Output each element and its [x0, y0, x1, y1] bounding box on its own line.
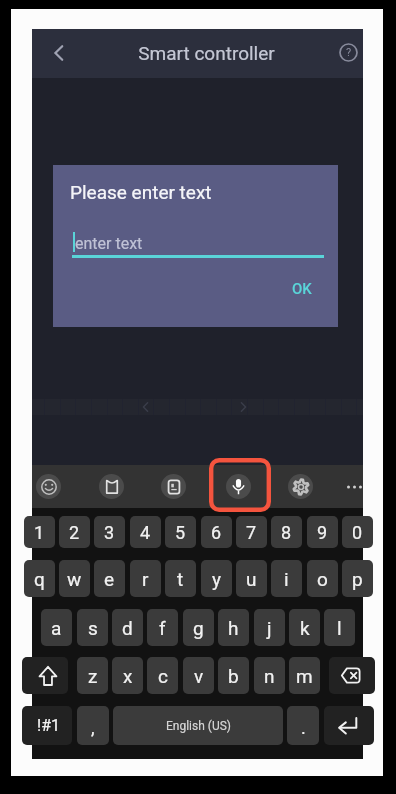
button[interactable]: Help — [332, 36, 365, 69]
staticText: 5 — [175, 522, 186, 543]
button[interactable]: , — [77, 706, 109, 745]
staticText: . — [301, 717, 306, 738]
staticText: a — [51, 617, 62, 639]
staticText: ? — [346, 46, 352, 59]
staticText: g — [193, 617, 204, 639]
button[interactable]: v — [183, 657, 214, 694]
button[interactable]: . — [287, 706, 319, 745]
staticText: 4 — [140, 522, 151, 543]
staticText: c — [158, 665, 168, 687]
staticText: 8 — [281, 522, 292, 543]
staticText: p — [352, 568, 363, 590]
staticText: w — [67, 568, 82, 590]
staticText: m — [296, 665, 313, 687]
staticText: d — [122, 617, 133, 639]
button[interactable]: r — [130, 560, 161, 597]
staticText: enter text — [75, 234, 143, 253]
button[interactable]: Stickers — [161, 474, 186, 499]
staticText: s — [88, 617, 98, 639]
staticText: Smart controller — [138, 42, 275, 64]
button[interactable]: !#1 — [22, 706, 72, 745]
button[interactable]: o — [307, 560, 338, 597]
button[interactable]: 8 — [271, 516, 302, 548]
button[interactable]: Voice input — [226, 474, 251, 499]
staticText: z — [88, 665, 98, 687]
button[interactable]: l — [324, 609, 355, 646]
staticText: b — [228, 665, 239, 687]
button[interactable]: 9 — [307, 516, 338, 548]
button[interactable]: e — [94, 560, 125, 597]
button[interactable]: Emoji — [36, 474, 61, 499]
button[interactable]: 1 — [24, 516, 55, 548]
button[interactable]: Back — [42, 36, 75, 69]
button[interactable]: 2 — [59, 516, 90, 548]
staticText: OK — [292, 280, 312, 298]
button[interactable]: z — [77, 657, 108, 694]
button[interactable]: More options — [342, 474, 367, 499]
button[interactable]: Enter — [324, 706, 374, 745]
staticText: 3 — [104, 522, 115, 543]
button[interactable]: 7 — [236, 516, 267, 548]
staticText: 0 — [352, 522, 363, 543]
button[interactable]: n — [254, 657, 285, 694]
staticText: 7 — [246, 522, 257, 543]
button[interactable]: 0 — [342, 516, 373, 548]
button[interactable]: m — [289, 657, 320, 694]
button[interactable]: s — [77, 609, 108, 646]
staticText: , — [91, 717, 95, 738]
staticText: u — [246, 568, 257, 590]
staticText: t — [177, 568, 184, 590]
staticText: o — [317, 568, 328, 590]
staticText: i — [284, 568, 289, 590]
button[interactable]: u — [236, 560, 267, 597]
staticText: n — [264, 665, 275, 687]
staticText: 1 — [34, 522, 45, 543]
button[interactable]: i — [271, 560, 302, 597]
button[interactable]: Shift — [22, 657, 68, 694]
staticText: r — [142, 568, 149, 590]
staticText: q — [34, 568, 45, 590]
button[interactable]: OK — [278, 272, 326, 305]
staticText: English (US) — [166, 719, 231, 733]
staticText: e — [104, 568, 115, 590]
button[interactable]: x — [112, 657, 143, 694]
staticText: !#1 — [37, 716, 60, 735]
button[interactable]: h — [218, 609, 249, 646]
staticText: f — [159, 617, 166, 639]
button[interactable]: 3 — [94, 516, 125, 548]
button[interactable]: English (US) — [113, 706, 283, 745]
button[interactable]: c — [147, 657, 178, 694]
staticText: h — [228, 617, 239, 639]
button[interactable]: Backspace — [329, 657, 375, 694]
button[interactable]: d — [112, 609, 143, 646]
button[interactable]: p — [342, 560, 373, 597]
button[interactable]: w — [59, 560, 90, 597]
button[interactable]: k — [289, 609, 320, 646]
button[interactable]: Settings — [288, 474, 313, 499]
staticText: v — [194, 665, 204, 687]
button[interactable]: Clipboard — [99, 474, 124, 499]
staticText: k — [300, 617, 310, 639]
staticText: y — [212, 568, 221, 590]
staticText: l — [337, 617, 342, 639]
staticText: x — [123, 665, 133, 687]
button[interactable]: a — [41, 609, 72, 646]
button[interactable]: 5 — [165, 516, 196, 548]
button[interactable]: j — [254, 609, 285, 646]
staticText: 2 — [69, 522, 80, 543]
button[interactable]: g — [183, 609, 214, 646]
button[interactable]: y — [201, 560, 232, 597]
button[interactable]: 4 — [130, 516, 161, 548]
button[interactable]: 6 — [201, 516, 232, 548]
staticText: j — [267, 617, 272, 639]
button[interactable]: b — [218, 657, 249, 694]
staticText: 6 — [211, 522, 222, 543]
button[interactable]: t — [165, 560, 196, 597]
staticText: 9 — [317, 522, 328, 543]
button[interactable]: q — [24, 560, 55, 597]
staticText: Please enter text — [70, 181, 212, 203]
button[interactable]: f — [147, 609, 178, 646]
